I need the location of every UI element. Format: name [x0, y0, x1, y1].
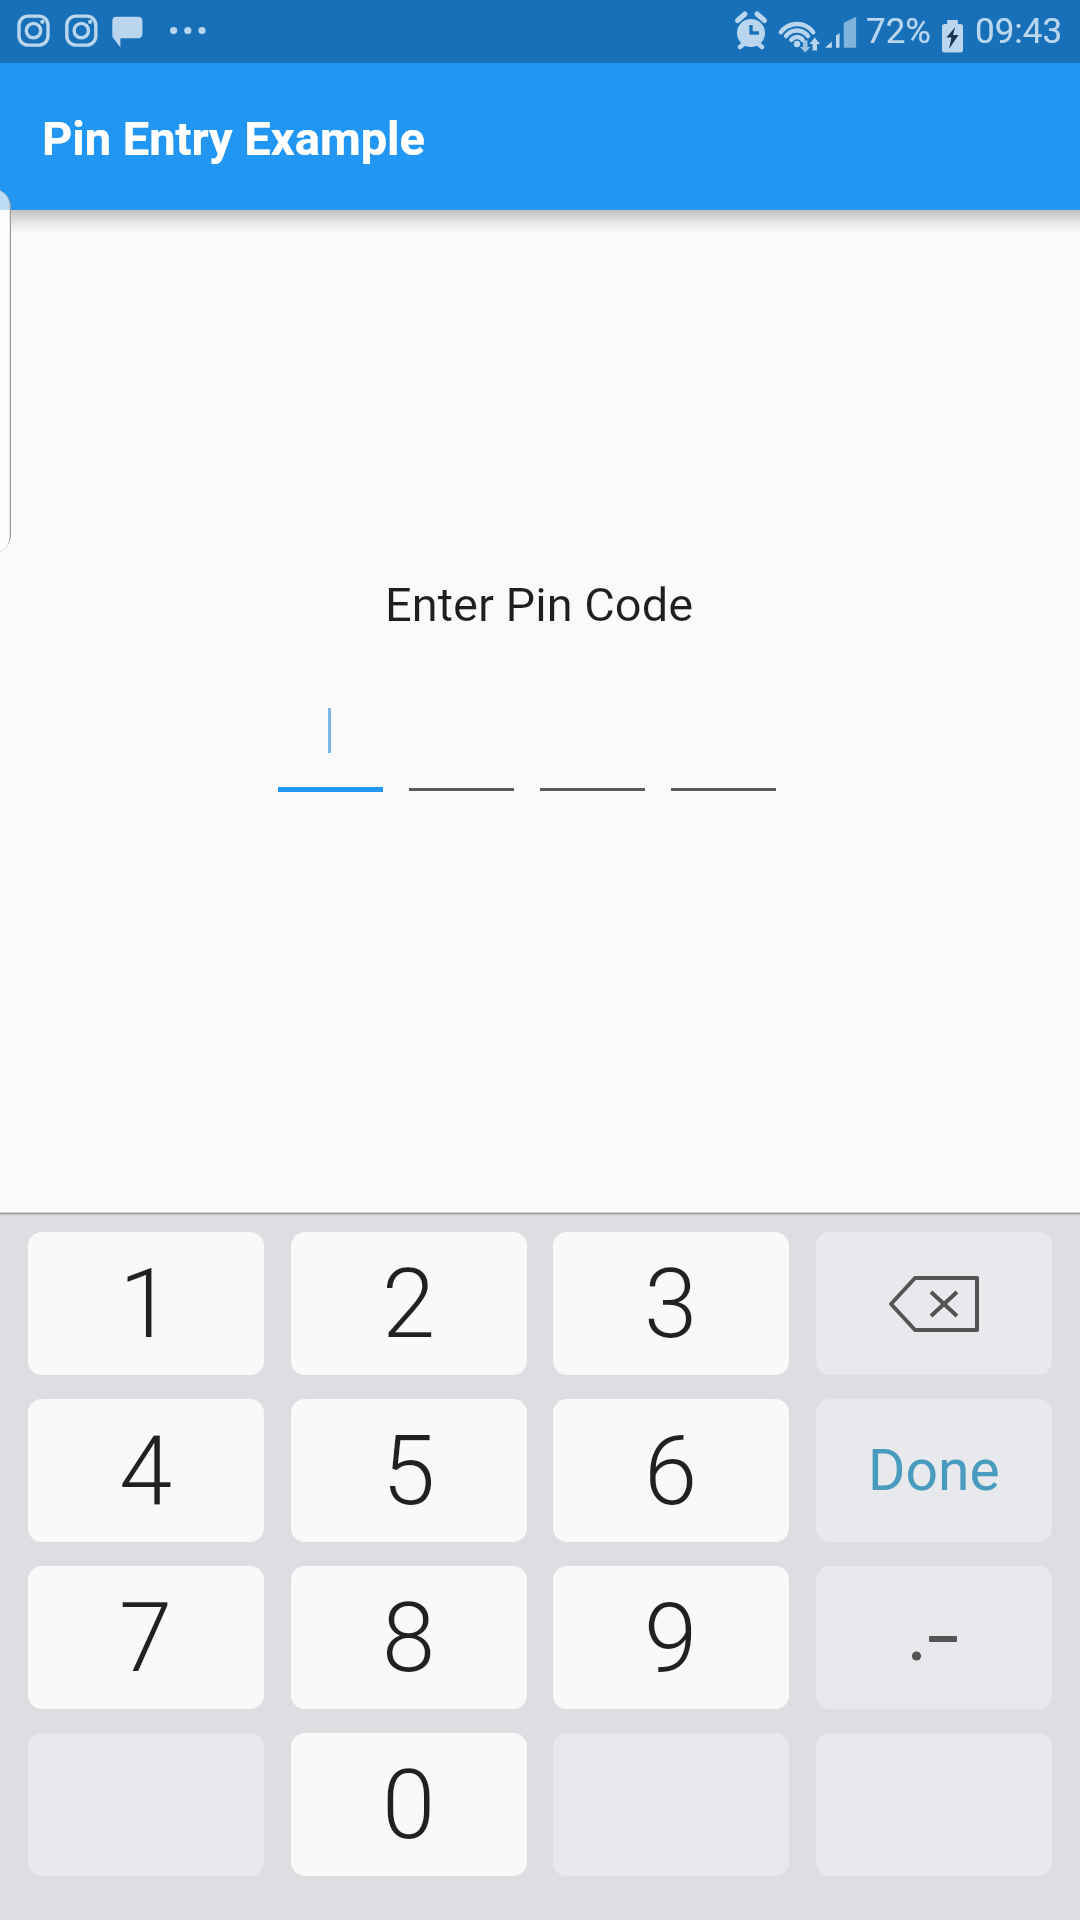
button[interactable]: 1 [28, 1232, 264, 1375]
button[interactable]: 2 [291, 1232, 527, 1375]
button[interactable]: PIN digit 3 [540, 700, 645, 792]
button[interactable]: Open navigation drawer [0, 188, 11, 554]
button[interactable]: 6 [553, 1399, 789, 1542]
button[interactable]: Backspace [816, 1232, 1052, 1375]
staticText: 4 [119, 1415, 173, 1528]
staticText: 09:43 [975, 11, 1063, 52]
staticText: 7 [119, 1582, 173, 1695]
staticText: 2 [382, 1248, 436, 1361]
staticText: Done [868, 1437, 1000, 1504]
button[interactable]: PIN digit 2 [409, 700, 514, 792]
button[interactable]: 4 [28, 1399, 264, 1542]
button[interactable]: 9 [553, 1566, 789, 1709]
button[interactable]: PIN digit 1 [278, 700, 383, 792]
button[interactable]: Dot and dash [816, 1566, 1052, 1709]
button[interactable]: 3 [553, 1232, 789, 1375]
button[interactable]: PIN digit 4 [671, 700, 776, 792]
staticText: 1 [119, 1248, 173, 1361]
staticText: 9 [644, 1582, 698, 1695]
button[interactable]: 7 [28, 1566, 264, 1709]
staticText: Pin Entry Example [42, 111, 425, 166]
button[interactable]: Done [816, 1399, 1052, 1542]
staticText: 0 [382, 1749, 436, 1862]
staticText: Enter Pin Code [385, 577, 694, 632]
button[interactable]: 5 [291, 1399, 527, 1542]
staticText: 6 [644, 1415, 698, 1528]
button[interactable]: 0 [291, 1733, 527, 1876]
staticText: 8 [382, 1582, 436, 1695]
staticText: 3 [644, 1248, 698, 1361]
staticText: 72% [866, 11, 931, 52]
staticText: 5 [382, 1415, 436, 1528]
button[interactable]: 8 [291, 1566, 527, 1709]
